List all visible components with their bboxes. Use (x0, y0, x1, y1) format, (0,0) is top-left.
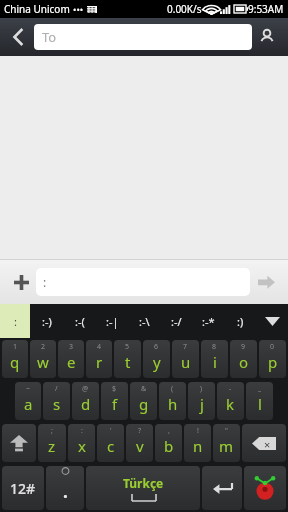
staticText: 9:53AM (248, 2, 284, 16)
button[interactable]: 4 (86, 340, 112, 378)
button[interactable]: Add attachment (6, 267, 36, 297)
staticText: c (107, 436, 115, 456)
staticText: q (10, 352, 20, 372)
button[interactable]: 7 (172, 340, 199, 378)
button[interactable]: :-) (30, 304, 63, 338)
staticText: ( (171, 384, 174, 394)
staticText: Türkçe (123, 475, 164, 491)
staticText: $ (112, 384, 117, 394)
button[interactable]: ~ (15, 382, 41, 420)
button[interactable]: 8 (201, 340, 228, 378)
staticText: ! (197, 426, 199, 436)
staticText: ••• (73, 3, 84, 15)
button[interactable]: Contacts (252, 22, 282, 52)
staticText: e (67, 352, 76, 372)
button[interactable]: 12# (2, 466, 44, 510)
button[interactable]: :) (224, 304, 256, 338)
staticText: 12# (10, 479, 36, 498)
button[interactable]: 9 (230, 340, 257, 378)
staticText: i (213, 352, 217, 372)
staticText: :-/ (171, 314, 182, 329)
staticText: " (225, 426, 228, 436)
staticText: 0.00K/s (167, 2, 202, 16)
button[interactable]: 6 (143, 340, 170, 378)
staticText: ; (51, 426, 53, 436)
staticText: 3 (69, 342, 74, 352)
button[interactable]: : (0, 304, 30, 338)
staticText: : (81, 426, 83, 436)
button[interactable]: : (36, 268, 250, 296)
staticText: ) (200, 384, 203, 394)
staticText: 7 (183, 342, 188, 352)
button[interactable]: 2 (30, 340, 56, 378)
staticText: 1 (13, 342, 18, 352)
button[interactable]: : (68, 424, 95, 462)
button[interactable] (244, 466, 286, 510)
staticText: :-\ (139, 314, 150, 329)
staticText: r (96, 352, 103, 372)
staticText: :-) (42, 314, 52, 329)
button[interactable]: ! (184, 424, 211, 462)
button[interactable]: ; (38, 424, 66, 462)
button[interactable]: 3 (58, 340, 84, 378)
button[interactable] (202, 466, 242, 510)
staticText: d (81, 394, 91, 414)
staticText: n (193, 436, 203, 456)
button[interactable]: :-( (63, 304, 96, 338)
staticText: t (125, 352, 131, 372)
staticText: l (258, 394, 262, 414)
staticText: 5 (125, 342, 130, 352)
button[interactable]: " (213, 424, 240, 462)
staticText: g (139, 394, 149, 414)
staticText: k (226, 394, 235, 414)
staticText: u (181, 352, 191, 372)
button[interactable]: ( (159, 382, 186, 420)
staticText: - (229, 384, 232, 394)
staticText: v (136, 436, 144, 456)
button[interactable]: , (155, 424, 182, 462)
staticText: j (200, 394, 204, 414)
button[interactable]: :-\ (128, 304, 160, 338)
button[interactable]: & (130, 382, 157, 420)
button[interactable]: 5 (114, 340, 141, 378)
button[interactable]: . (46, 466, 84, 510)
staticText: 2 (41, 342, 46, 352)
button[interactable]: More emoji (256, 304, 288, 338)
staticText: , (168, 426, 170, 436)
staticText: :-| (106, 314, 119, 329)
button[interactable]: :-| (96, 304, 128, 338)
staticText: ~ (26, 384, 31, 394)
staticText: a (24, 394, 33, 414)
button[interactable]: Back (6, 24, 32, 50)
button[interactable]: ? (126, 424, 153, 462)
staticText: : (14, 314, 17, 329)
button[interactable]: ' (97, 424, 124, 462)
staticText: y (153, 352, 161, 372)
button[interactable]: $ (101, 382, 128, 420)
button[interactable]: :-* (192, 304, 224, 338)
staticText: 8 (212, 342, 217, 352)
button[interactable]: Türkçe (86, 466, 200, 510)
button[interactable]: ) (188, 382, 215, 420)
button[interactable] (2, 424, 36, 462)
staticText: p (268, 352, 278, 372)
staticText: f (112, 394, 118, 414)
staticText: @ (82, 384, 89, 394)
button[interactable]: × (242, 424, 286, 462)
staticText: h (168, 394, 178, 414)
button[interactable]: 0 (259, 340, 286, 378)
button[interactable]: @ (72, 382, 99, 420)
staticText: China Unicom (4, 2, 70, 16)
button[interactable]: _ (246, 382, 273, 420)
button[interactable]: Send (250, 266, 282, 298)
staticText: . (63, 480, 68, 503)
button[interactable]: 1 (2, 340, 28, 378)
staticText: & (141, 384, 147, 394)
button[interactable]: :-/ (160, 304, 192, 338)
staticText: z (48, 436, 56, 456)
button[interactable]: - (217, 382, 244, 420)
button[interactable]: To (34, 24, 252, 50)
staticText: :) (237, 314, 244, 329)
staticText: x (78, 436, 86, 456)
button[interactable]: / (43, 382, 70, 420)
